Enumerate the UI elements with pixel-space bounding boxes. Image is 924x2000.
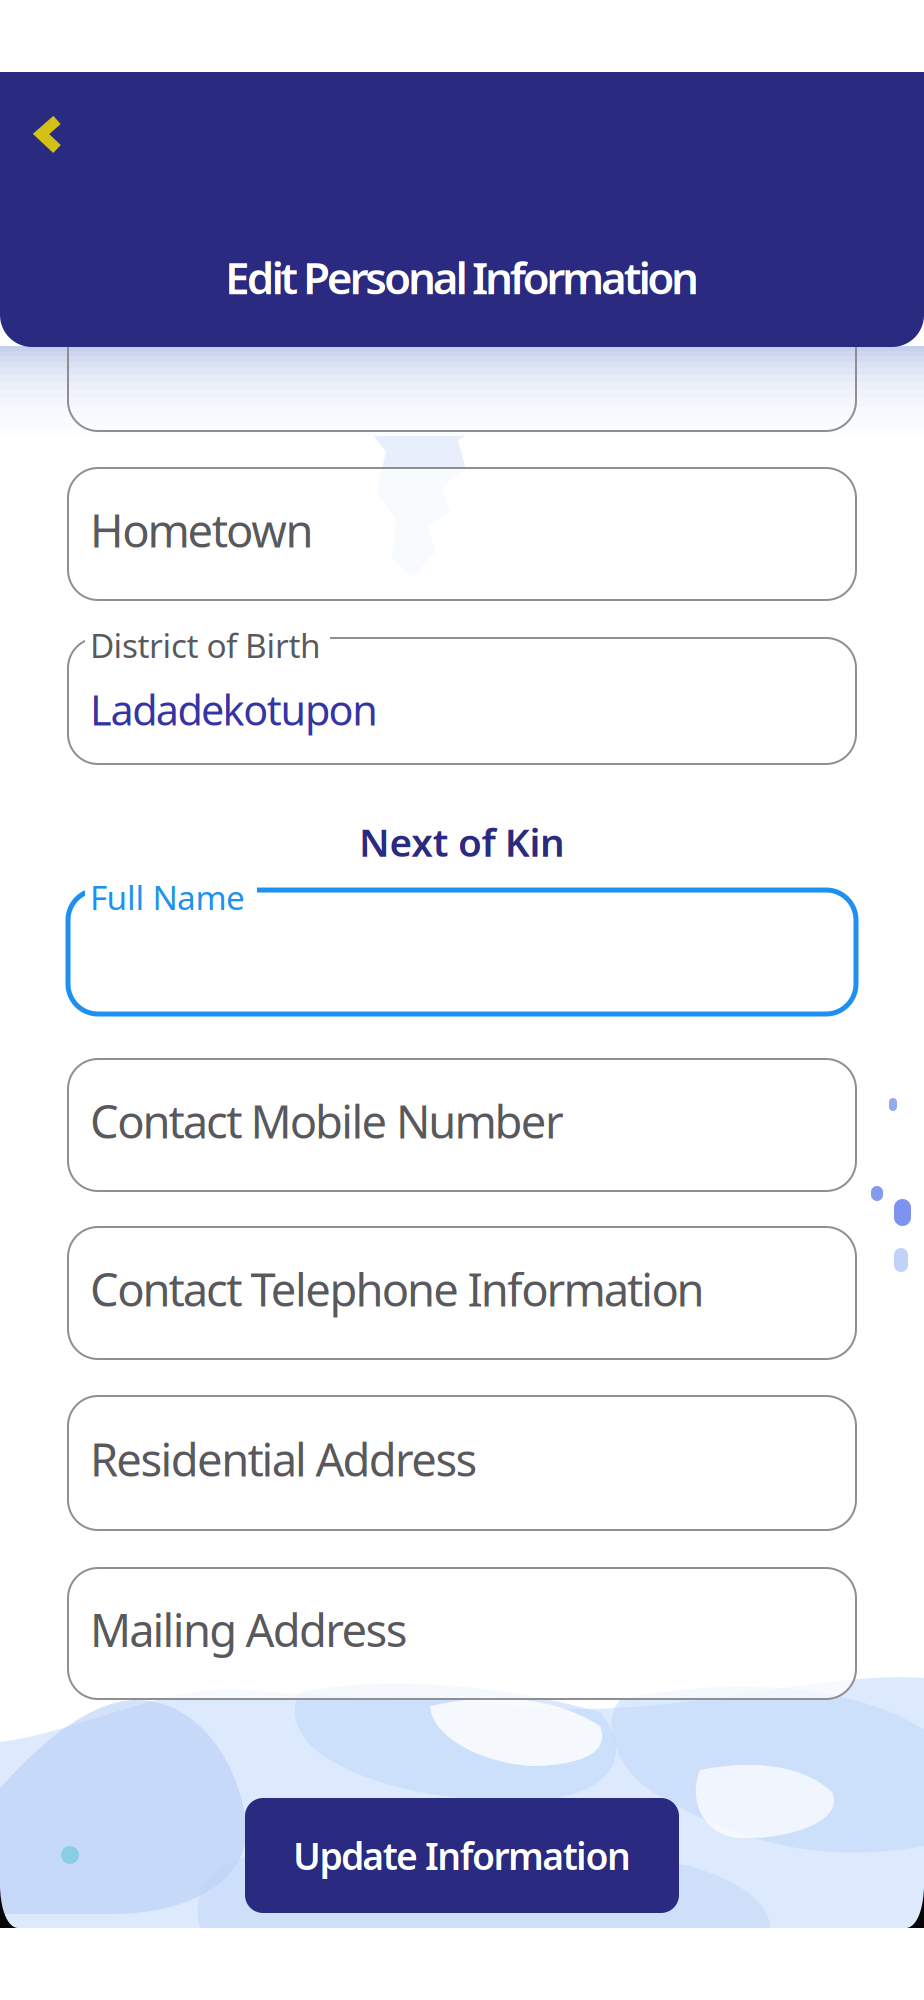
staticText: District of Birth [90,623,321,667]
staticText: Contact Mobile Number [90,1091,564,1151]
button[interactable]: Hometown [68,468,856,600]
staticText: Edit Personal Information [225,248,699,306]
button[interactable]: Contact Telephone Information [68,1227,856,1359]
staticText: Next of Kin [359,816,565,867]
staticText: Residential Address [90,1429,478,1489]
staticText: Ladadekotupon [90,682,378,737]
button[interactable]: Full Name [68,872,856,1014]
button[interactable]: Residential Address [68,1396,856,1530]
staticText: Full Name [90,875,245,919]
staticText: Contact Telephone Information [90,1259,705,1319]
staticText: Mailing Address [90,1599,408,1660]
button[interactable]: Mailing Address [68,1568,856,1699]
button[interactable]: Contact Mobile Number [68,1059,856,1191]
staticText: Update Information [293,1831,631,1880]
staticText: Hometown [90,500,313,560]
button[interactable]: Back [12,98,84,170]
button[interactable]: Update Information [245,1798,679,1913]
button[interactable]: District of Birth [68,620,856,764]
